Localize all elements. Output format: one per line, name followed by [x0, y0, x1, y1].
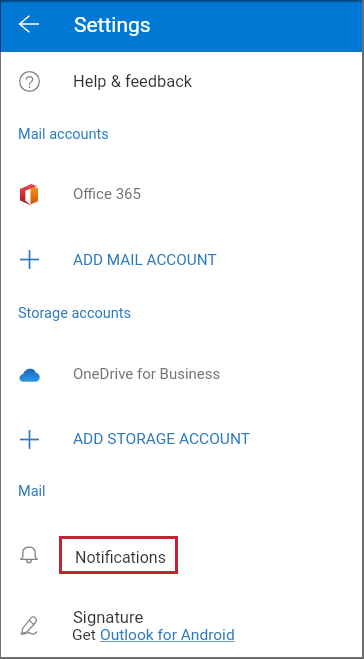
staticText: Office 365: [73, 185, 141, 203]
staticText: ADD STORAGE ACCOUNT: [73, 430, 251, 448]
button[interactable]: [0, 411, 364, 467]
staticText: Help & feedback: [73, 72, 193, 91]
staticText: Outlook for Android: [100, 626, 235, 644]
staticText: OneDrive for Business: [73, 365, 221, 383]
staticText: Mail accounts: [18, 126, 109, 143]
button[interactable]: Notifications: [59, 536, 178, 574]
button[interactable]: [0, 600, 364, 652]
button[interactable]: [0, 346, 364, 402]
button[interactable]: [0, 231, 364, 287]
staticText: Settings: [74, 13, 151, 38]
button[interactable]: Back: [5, 0, 53, 48]
staticText: ADD MAIL ACCOUNT: [73, 251, 217, 269]
button[interactable]: [0, 165, 364, 221]
button[interactable]: [0, 52, 364, 109]
staticText: Notifications: [75, 548, 166, 567]
staticText: Get: [72, 626, 100, 644]
staticText: Signature: [73, 608, 144, 627]
button[interactable]: [0, 526, 364, 581]
staticText: Storage accounts: [18, 305, 131, 322]
staticText: Mail: [18, 483, 46, 500]
